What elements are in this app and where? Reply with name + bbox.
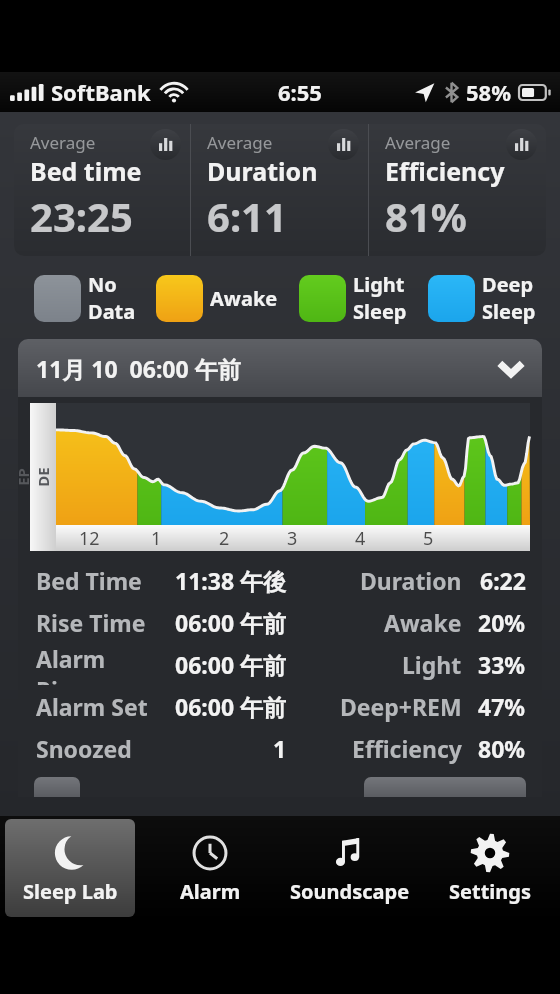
staticText: Alarm Ring [36,643,152,685]
staticText: 6:11 [207,189,287,243]
staticText: 1 [273,733,287,764]
staticText: 12 [79,526,100,551]
staticText: 2 [219,526,230,551]
staticText: 1 [151,526,162,551]
button[interactable]: No [34,271,136,325]
staticText: Deep [482,271,534,298]
button[interactable]: Bed Time [18,559,542,601]
button[interactable]: Delete [34,777,80,797]
staticText: Alarm Set [36,691,148,722]
staticText: 23:25 [30,189,133,243]
staticText: Efficiency [385,154,505,188]
staticText: Average [30,131,96,154]
staticText: Data [88,298,136,325]
staticText: Light [353,271,405,298]
staticText: Average [207,131,273,154]
staticText: Awake [384,607,462,638]
staticText: 06:00 午前 [175,691,287,722]
button[interactable]: Statistics [328,129,359,160]
staticText: Sleep Lab [23,878,118,905]
staticText: 11:38 午後 [175,565,287,596]
staticText: 81% [385,189,467,243]
staticText: 5 [423,526,434,551]
staticText: Sleep [353,298,407,325]
staticText: 11月 10 06:00 午前 [36,353,241,384]
staticText: 33% [478,649,526,680]
button[interactable]: Alarm Ring [18,643,542,685]
staticText: SLEEP DEPTH [18,464,93,490]
staticText: Snoozed [36,733,132,764]
staticText: 20% [478,607,526,638]
staticText: No [88,271,117,298]
staticText: Light [402,649,462,680]
button[interactable]: Statistics [150,129,181,160]
staticText: Efficiency [352,733,462,764]
button[interactable]: Soundscape [285,819,415,917]
staticText: Deep+REM [340,691,462,722]
staticText: 58% [466,77,512,107]
staticText: 06:00 午前 [175,607,287,638]
staticText: Soundscape [290,878,410,905]
staticText: Duration [207,154,318,188]
staticText: SoftBank [51,77,151,107]
staticText: 6:55 [278,77,322,107]
button[interactable]: Share [364,777,526,797]
button[interactable]: Settings [425,819,555,917]
button[interactable]: Average [191,124,368,256]
button[interactable]: Snoozed [18,727,542,769]
staticText: Rise Time [36,607,146,638]
button[interactable]: Rise Time [18,601,542,643]
staticText: Alarm [180,878,241,905]
button[interactable]: Alarm [145,819,275,917]
staticText: Awake [210,285,278,312]
button[interactable]: 11月 10 06:00 午前 [18,339,542,397]
staticText: 47% [478,691,526,722]
button[interactable]: Alarm Set [18,685,542,727]
staticText: Settings [449,878,531,905]
staticText: Bed time [30,154,142,188]
button[interactable]: Statistics [506,129,537,160]
staticText: 4 [355,526,366,551]
button[interactable]: Average [14,124,190,256]
staticText: Average [385,131,451,154]
staticText: 6:22 [480,565,526,596]
button[interactable]: Awake [156,275,278,322]
button[interactable]: Light [299,271,407,325]
staticText: 80% [478,733,526,764]
staticText: 06:00 午前 [175,649,287,680]
button[interactable]: Deep [428,271,536,325]
button[interactable]: Sleep Lab [5,819,135,917]
button[interactable]: Average [369,124,546,256]
staticText: 3 [287,526,298,551]
staticText: Bed Time [36,565,142,596]
staticText: Duration [360,565,462,596]
staticText: Sleep [482,298,536,325]
